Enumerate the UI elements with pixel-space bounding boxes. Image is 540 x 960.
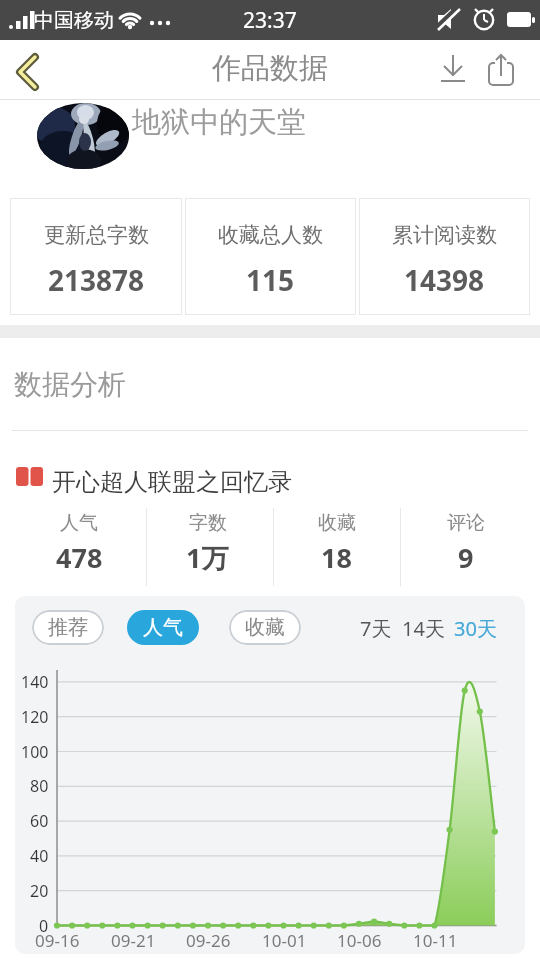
staticText: 18 (321, 539, 352, 576)
staticText: 23:37 (243, 6, 297, 35)
staticText: 478 (56, 539, 103, 576)
staticText: 作品数据 (212, 50, 328, 87)
staticText: 数据分析 (14, 367, 126, 402)
staticText: 推荐 (48, 615, 88, 640)
button[interactable]: 评论 (401, 511, 530, 590)
staticText: 收藏总人数 (218, 222, 323, 248)
staticText: 收藏 (245, 615, 285, 640)
staticText: 60 (30, 810, 49, 832)
button[interactable]: 人气 (127, 610, 199, 645)
staticText: 09-26 (186, 929, 231, 951)
staticText: 开心超人联盟之回忆录 (52, 467, 292, 497)
staticText: 1万 (186, 539, 229, 576)
staticText: 9 (458, 539, 474, 576)
button[interactable]: 收藏 (229, 610, 301, 645)
staticText: 100 (21, 741, 49, 763)
staticText: 14天 (402, 615, 445, 642)
staticText: 09-16 (35, 929, 80, 951)
staticText: 更新总字数 (44, 222, 149, 248)
staticText: 30天 (454, 615, 497, 642)
staticText: 09-21 (111, 929, 156, 951)
staticText: 累计阅读数 (392, 222, 497, 248)
button[interactable] (6, 48, 50, 92)
staticText: 115 (246, 261, 295, 299)
staticText: 140 (21, 671, 49, 693)
staticText: 10-11 (413, 929, 458, 951)
staticText: 中国移动 (34, 8, 114, 33)
button[interactable] (431, 48, 475, 92)
button[interactable]: 收藏总人数 (185, 198, 356, 315)
staticText: 评论 (447, 511, 485, 535)
staticText: 20 (30, 880, 49, 902)
staticText: 人气 (60, 511, 98, 535)
staticText: 10-06 (337, 929, 382, 951)
staticText: 120 (21, 706, 49, 728)
button[interactable]: 开心超人联盟之回忆录 (0, 431, 540, 500)
staticText: 人气 (143, 615, 183, 640)
button[interactable]: 推荐 (32, 610, 104, 645)
button[interactable]: 14天 (401, 613, 445, 643)
button[interactable]: 更新总字数 (10, 198, 182, 315)
button[interactable]: 30天 (453, 613, 497, 643)
staticText: 字数 (189, 511, 227, 535)
button[interactable]: 累计阅读数 (359, 198, 530, 315)
staticText: 10-01 (262, 929, 307, 951)
button[interactable]: 地狱中的天堂 (0, 100, 540, 198)
button[interactable]: 人气 (15, 511, 143, 590)
button[interactable] (477, 48, 521, 92)
button[interactable]: 收藏 (272, 511, 401, 590)
staticText: 收藏 (318, 511, 356, 535)
staticText: 0 (39, 915, 49, 937)
staticText: 80 (30, 775, 49, 797)
staticText: 地狱中的天堂 (132, 104, 306, 141)
staticText: 40 (30, 845, 49, 867)
button[interactable]: 字数 (143, 511, 272, 590)
button[interactable]: 7天 (356, 613, 396, 643)
staticText: 213878 (48, 261, 145, 299)
staticText: 14398 (404, 261, 485, 299)
staticText: 7天 (360, 615, 392, 642)
